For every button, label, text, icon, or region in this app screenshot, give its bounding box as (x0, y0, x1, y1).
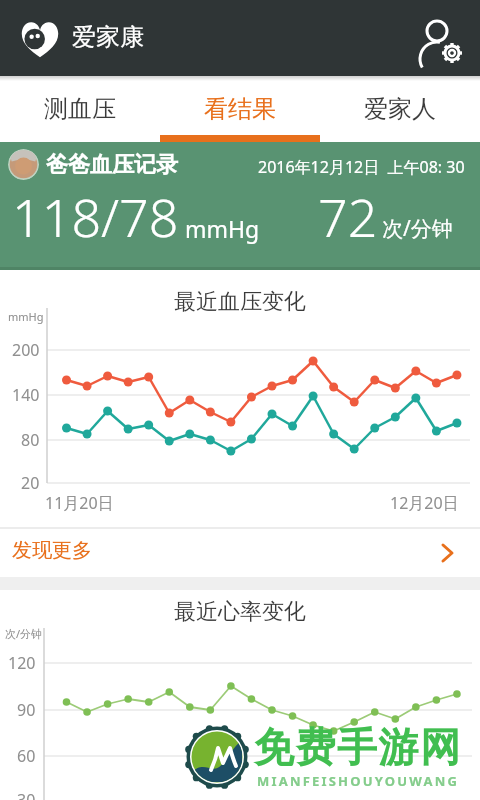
staticText: 爱家康 (72, 22, 144, 52)
staticText: 次/分钟 (5, 626, 43, 641)
button[interactable]: 爱家人 (320, 76, 480, 142)
staticText: 20 (21, 472, 40, 494)
button[interactable]: 爸爸血压记录 (0, 142, 480, 270)
staticText: 140 (12, 384, 40, 406)
staticText: 11月20日 (45, 492, 114, 514)
staticText: 发现更多 (12, 538, 92, 563)
staticText: 次/分钟 (382, 214, 453, 243)
staticText: 最近血压变化 (174, 288, 306, 316)
button[interactable] (412, 12, 468, 68)
staticText: 118/78 (12, 181, 179, 252)
staticText: 120 (8, 652, 36, 674)
staticText: 2016年12月12日 上午08: 30 (258, 156, 465, 178)
staticText: 最近心率变化 (174, 598, 306, 626)
button[interactable]: 发现更多 (0, 529, 480, 577)
staticText: 爸爸血压记录 (46, 151, 178, 179)
staticText: 72 (318, 181, 378, 252)
staticText: 200 (12, 339, 40, 361)
button[interactable]: 看结果 (160, 76, 320, 142)
staticText: 60 (17, 745, 36, 767)
staticText: 免费手游网 (254, 722, 462, 772)
staticText: 30 (17, 789, 36, 800)
button[interactable]: 测血压 (0, 76, 160, 142)
staticText: 80 (21, 429, 40, 451)
staticText: mmHg (185, 213, 260, 244)
staticText: 12月20日 (390, 492, 459, 514)
staticText: 测血压 (44, 94, 116, 124)
staticText: 爱家人 (364, 94, 436, 124)
staticText: 90 (17, 699, 36, 721)
staticText: MIANFEISHOUYOUWANG (257, 772, 460, 790)
staticText: mmHg (8, 309, 44, 324)
staticText: 看结果 (204, 94, 276, 124)
